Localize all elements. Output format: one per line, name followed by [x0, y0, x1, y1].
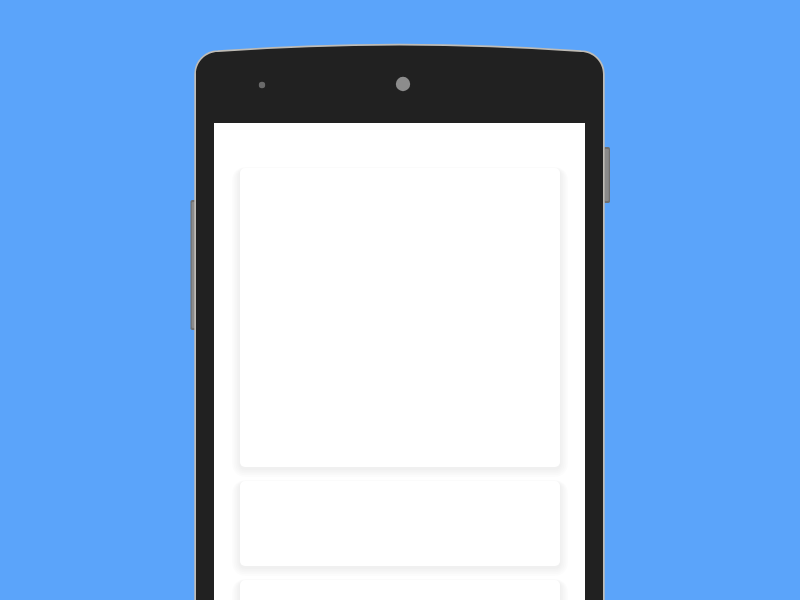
button[interactable]: Volume	[191, 200, 197, 330]
button[interactable]: Power	[604, 147, 611, 203]
